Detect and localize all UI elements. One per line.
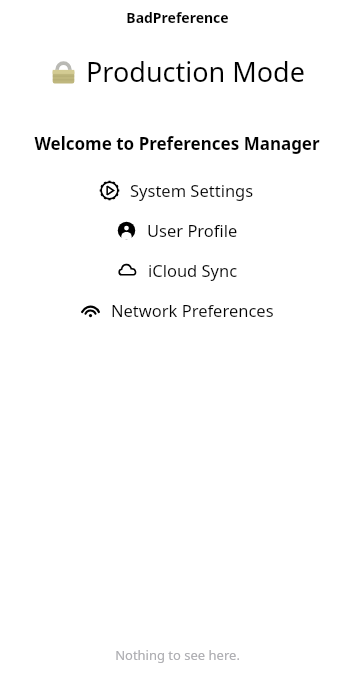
staticText: System Settings xyxy=(130,179,254,201)
staticText: iCloud Sync xyxy=(148,259,238,281)
staticText: User Profile xyxy=(147,219,238,241)
button[interactable]: User profile xyxy=(0,214,354,246)
staticText: BadPreference xyxy=(126,8,229,27)
other: Locked xyxy=(50,58,77,85)
other: Network xyxy=(80,300,101,321)
other: User profile xyxy=(117,221,136,240)
staticText: Welcome to Preferences Manager xyxy=(34,132,320,155)
other: iCloud xyxy=(117,260,138,281)
button[interactable]: iCloud xyxy=(0,254,354,286)
staticText: Network Preferences xyxy=(111,299,274,321)
staticText: Production Mode xyxy=(86,53,305,90)
button[interactable]: Settings gear xyxy=(0,174,354,206)
button[interactable]: Network xyxy=(0,294,354,326)
staticText: Nothing to see here. xyxy=(115,646,240,664)
other: Settings gear xyxy=(100,181,119,200)
